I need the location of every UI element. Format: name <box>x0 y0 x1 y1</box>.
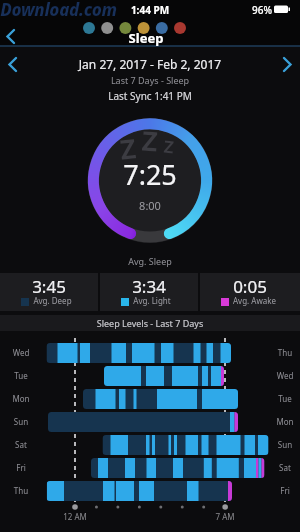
staticText: Last 7 Days - Sleep <box>40 74 260 86</box>
staticText: Z <box>118 129 138 168</box>
staticText: 12 AM <box>55 511 95 522</box>
staticText: 3:45 <box>0 275 98 298</box>
staticText: Wed <box>269 370 300 381</box>
staticText: Sleep <box>106 29 186 47</box>
staticText: Download.com <box>0 0 117 21</box>
staticText: Fri <box>269 485 300 496</box>
button[interactable] <box>0 22 40 46</box>
staticText: Sat <box>6 439 36 450</box>
staticText: Avg. Sleep <box>90 255 210 267</box>
staticText: Jan 27, 2017 - Feb 2, 2017 <box>40 56 260 72</box>
staticText: Sleep Levels - Last 7 Days <box>0 317 300 329</box>
staticText: Fri <box>6 462 36 473</box>
staticText: 96% <box>248 3 272 17</box>
staticText: 0:05 <box>200 275 300 298</box>
button[interactable] <box>2 54 28 74</box>
staticText: Thu <box>6 485 36 496</box>
staticText: 7 AM <box>205 511 245 522</box>
staticText: Mon <box>6 393 36 404</box>
button[interactable] <box>200 273 300 311</box>
staticText: Sun <box>6 416 36 427</box>
staticText: Avg. Deep <box>33 295 72 306</box>
staticText: Mon <box>269 416 300 427</box>
staticText: Last Sync 1:41 PM <box>40 89 260 103</box>
staticText: Avg. Light <box>133 295 171 306</box>
staticText: Sun <box>269 439 300 450</box>
staticText: Tue <box>6 370 36 381</box>
button[interactable] <box>274 54 300 74</box>
staticText: 1:44 PM <box>110 3 190 17</box>
staticText: 8:00 <box>90 198 210 213</box>
button[interactable] <box>0 273 98 311</box>
staticText: Wed <box>6 347 36 358</box>
staticText: Z <box>141 121 159 159</box>
staticText: Sat <box>269 462 300 473</box>
staticText: 3:34 <box>100 275 198 298</box>
staticText: Z <box>163 134 175 158</box>
staticText: Avg. Awake <box>233 295 276 306</box>
staticText: Tue <box>269 393 300 404</box>
button[interactable] <box>100 273 198 311</box>
staticText: 7:25 <box>90 156 210 193</box>
staticText: Thu <box>269 347 300 358</box>
